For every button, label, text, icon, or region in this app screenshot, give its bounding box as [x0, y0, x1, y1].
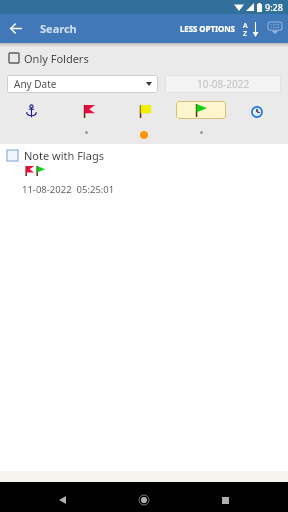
button[interactable]: Home	[126, 485, 162, 512]
button[interactable]: Recents	[207, 485, 243, 512]
button[interactable]: Green flag	[176, 101, 226, 119]
button[interactable]: Note with Flags	[0, 144, 288, 180]
staticText: A	[243, 21, 248, 31]
button[interactable]: Back	[0, 14, 30, 43]
staticText: 9:28	[265, 1, 283, 13]
staticText: Note with Flags	[24, 148, 104, 163]
button[interactable]: Anchor	[3, 101, 60, 122]
button[interactable]: Recent	[229, 101, 285, 122]
staticText: LESS OPTIONS	[180, 23, 235, 34]
staticText: 10-08-2022	[197, 77, 250, 91]
button[interactable]: Back	[44, 485, 80, 512]
button[interactable]: LESS OPTIONS	[174, 14, 241, 43]
button[interactable]: Sort A to Z	[240, 14, 262, 43]
button[interactable]: Red flag	[60, 101, 117, 122]
staticText: Z	[243, 29, 248, 39]
staticText: Any Date	[14, 77, 57, 91]
button[interactable]: Yellow flag	[117, 101, 173, 122]
button[interactable]: 10-08-2022	[165, 75, 281, 93]
staticText: 11-08-2022 05:25:01	[22, 183, 115, 196]
staticText: Search	[40, 21, 77, 36]
staticText: Only Folders	[24, 51, 89, 66]
button[interactable]: Keyboard	[264, 14, 286, 43]
button[interactable]: Any Date	[7, 75, 158, 93]
button[interactable]: Only Folders	[9, 50, 89, 66]
